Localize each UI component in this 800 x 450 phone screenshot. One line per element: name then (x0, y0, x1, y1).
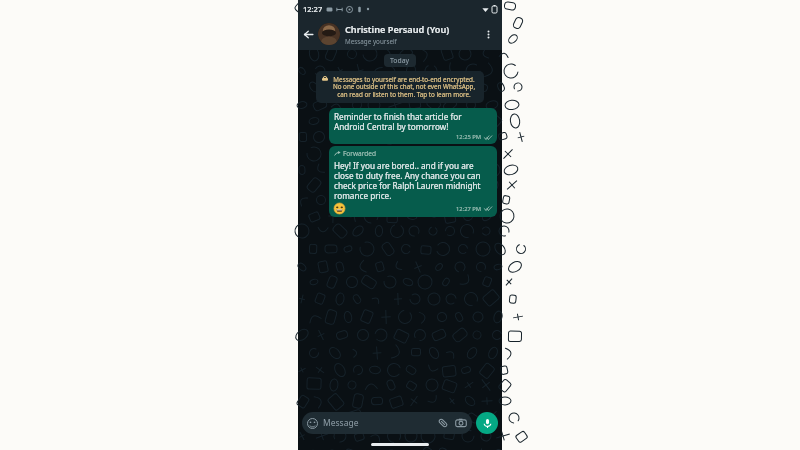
staticText: Hey! If you are bored.. and if you are c… (334, 160, 492, 202)
button[interactable]: Emoji (302, 412, 472, 434)
button[interactable]: Voice message (476, 412, 498, 434)
button[interactable]: Forwarded (329, 146, 497, 217)
button[interactable]: Camera (455, 417, 467, 429)
staticText: Reminder to finish that article for Andr… (334, 111, 492, 133)
staticText: Forwarded (343, 149, 376, 158)
button[interactable]: Messages to yourself are end-to-end encr… (316, 71, 484, 103)
staticText: Message (323, 417, 359, 429)
staticText: Christine Persaud (You) (345, 23, 450, 36)
button[interactable]: Attach (437, 417, 449, 429)
button[interactable]: Christine Persaud (You) (318, 18, 477, 50)
staticText: Message yourself (345, 37, 397, 46)
button[interactable]: More options (477, 23, 499, 45)
button[interactable]: Reminder to finish that article for Andr… (329, 108, 497, 144)
staticText: 12:25 PM (456, 133, 482, 141)
button[interactable]: Emoji (307, 418, 318, 429)
staticText: 12:27 (303, 4, 323, 14)
staticText: Today (390, 56, 410, 65)
staticText: Messages to yourself are end-to-end encr… (330, 75, 478, 99)
staticText: 12:27 PM (456, 205, 482, 213)
button[interactable]: Back (298, 24, 318, 44)
